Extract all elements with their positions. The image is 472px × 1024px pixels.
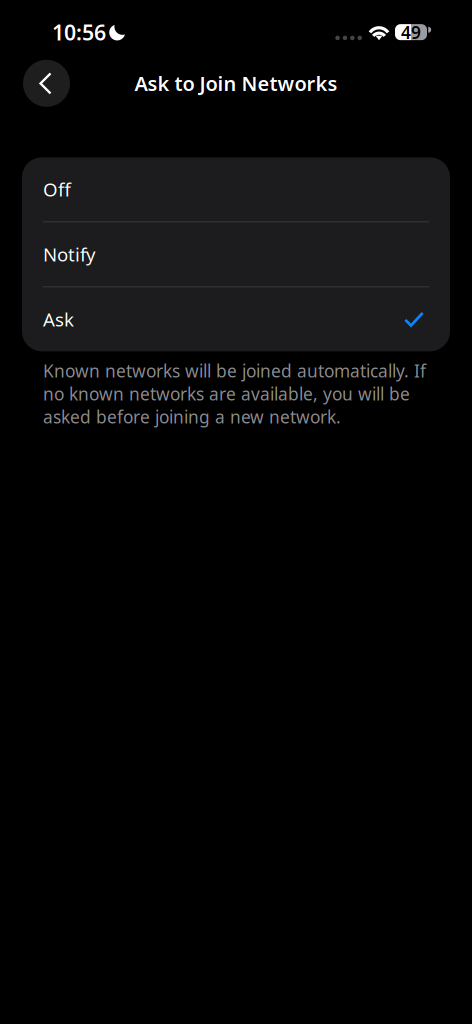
staticText: Ask to Join Networks — [134, 70, 337, 97]
staticText: Known networks will be joined automatica… — [43, 359, 426, 428]
staticText: Off — [43, 177, 71, 202]
button[interactable]: Back — [23, 60, 70, 107]
staticText: 49 — [401, 21, 421, 44]
button[interactable]: Notify — [22, 222, 450, 286]
staticText: Ask — [43, 307, 74, 332]
staticText: Notify — [43, 242, 96, 267]
button[interactable]: Off — [22, 157, 450, 221]
staticText: 10:56 — [52, 18, 106, 46]
button[interactable]: Ask — [22, 287, 450, 351]
